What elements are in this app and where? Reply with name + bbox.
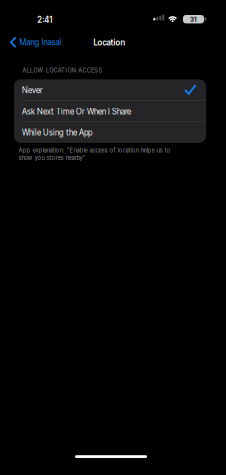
staticText: show you stores nearby” bbox=[19, 154, 86, 161]
staticText: App explanation: “Enable access of locat… bbox=[19, 147, 171, 154]
button[interactable]: Never bbox=[14, 79, 206, 100]
staticText: While Using the App bbox=[22, 128, 92, 138]
button[interactable]: While Using the App bbox=[14, 122, 206, 143]
staticText: Never bbox=[22, 85, 43, 95]
button[interactable]: Ask Next Time Or When I Share bbox=[14, 100, 206, 122]
staticText: ALLOW LOCATION ACCESS bbox=[22, 67, 102, 74]
staticText: 31 bbox=[190, 15, 197, 23]
button[interactable]: Mang Inasal bbox=[10, 37, 61, 47]
staticText: Ask Next Time Or When I Share bbox=[22, 107, 131, 116]
staticText: Location bbox=[93, 38, 125, 47]
staticText: Mang Inasal bbox=[19, 37, 61, 47]
staticText: 2:41 bbox=[37, 15, 52, 25]
